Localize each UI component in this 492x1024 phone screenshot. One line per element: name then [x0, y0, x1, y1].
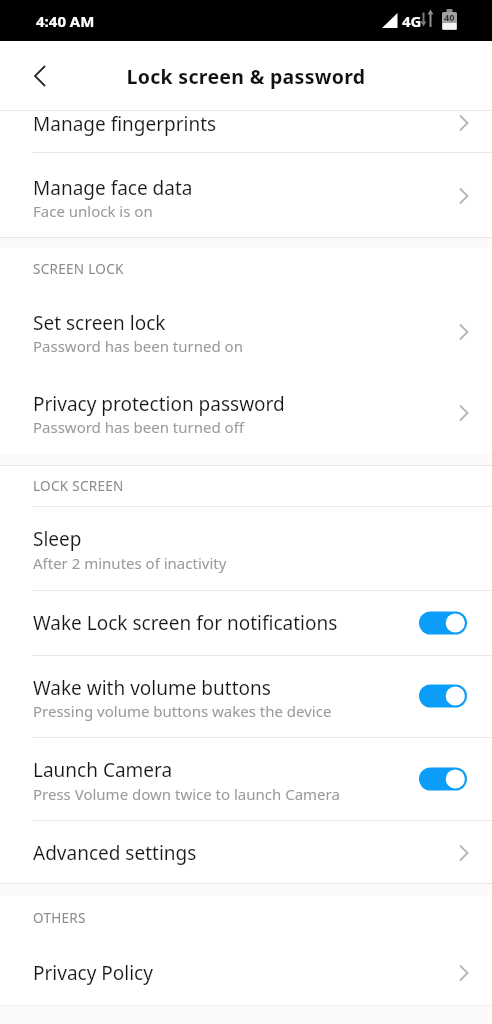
staticText: OTHERS	[33, 909, 86, 927]
staticText: Privacy protection password	[33, 391, 285, 417]
button[interactable]	[0, 940, 492, 1006]
staticText: Advanced settings	[33, 840, 197, 866]
staticText: Wake with volume buttons	[33, 675, 271, 701]
staticText: 40	[444, 11, 455, 23]
staticText: Lock screen & password	[0, 63, 492, 90]
staticText: Manage fingerprints	[33, 111, 217, 137]
button[interactable]	[0, 821, 492, 883]
staticText: Press Volume down twice to launch Camera	[33, 784, 340, 804]
staticText: Wake Lock screen for notifications	[33, 610, 338, 636]
staticText: Password has been turned off	[33, 417, 244, 437]
button[interactable]	[0, 153, 492, 237]
staticText: Sleep	[33, 526, 82, 552]
button[interactable]	[419, 684, 467, 708]
staticText: 4:40 AM	[36, 11, 95, 31]
staticText: LOCK SCREEN	[33, 477, 124, 495]
button[interactable]	[20, 60, 56, 92]
staticText: SCREEN LOCK	[33, 260, 124, 278]
staticText: Face unlock is on	[33, 201, 153, 221]
staticText: Launch Camera	[33, 757, 173, 783]
button[interactable]	[0, 370, 492, 442]
button[interactable]	[419, 611, 467, 635]
staticText: Privacy Policy	[33, 960, 153, 986]
button[interactable]	[0, 111, 492, 152]
staticText: Pressing volume buttons wakes the device	[33, 701, 332, 721]
button[interactable]	[0, 591, 492, 655]
button[interactable]	[0, 507, 492, 590]
button[interactable]	[0, 295, 492, 365]
button[interactable]	[0, 656, 492, 737]
button[interactable]	[419, 767, 467, 791]
staticText: Password has been turned on	[33, 336, 243, 356]
staticText: 4G	[402, 11, 422, 31]
staticText: Manage face data	[33, 175, 193, 201]
staticText: Set screen lock	[33, 310, 166, 336]
staticText: After 2 minutes of inactivity	[33, 553, 227, 573]
button[interactable]	[0, 738, 492, 820]
